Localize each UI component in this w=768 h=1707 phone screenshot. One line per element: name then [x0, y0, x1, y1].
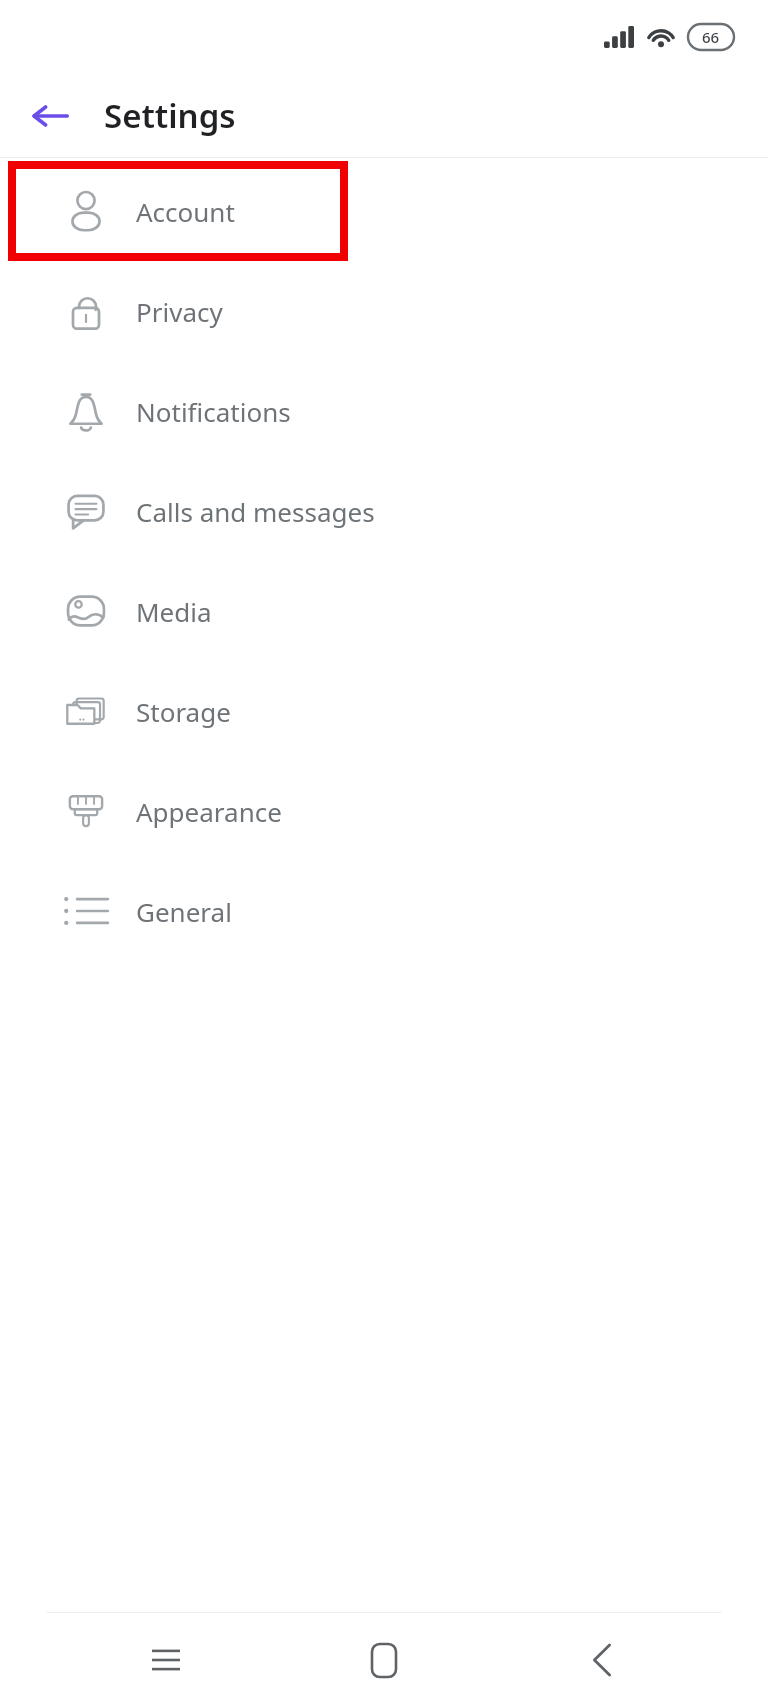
staticText: Media [136, 594, 212, 629]
button[interactable]: Privacy [0, 261, 768, 361]
staticText: 66 [702, 27, 720, 47]
button[interactable]: General [0, 861, 768, 961]
button[interactable]: Notifications [0, 361, 768, 461]
staticText: Privacy [136, 294, 223, 329]
staticText: Storage [136, 694, 231, 729]
staticText: Appearance [136, 794, 282, 829]
staticText: Settings [104, 93, 236, 138]
button[interactable]: Back [564, 1622, 640, 1698]
button[interactable]: Storage [0, 661, 768, 761]
staticText: General [136, 894, 232, 929]
staticText: Calls and messages [136, 494, 375, 529]
button[interactable]: Back [18, 84, 82, 148]
staticText: Account [136, 194, 235, 229]
button[interactable]: Recent apps [128, 1622, 204, 1698]
button[interactable]: Account [0, 161, 768, 261]
button[interactable]: Home [346, 1622, 422, 1698]
button[interactable]: Calls and messages [0, 461, 768, 561]
button[interactable]: Media [0, 561, 768, 661]
staticText: Notifications [136, 394, 291, 429]
button[interactable]: Appearance [0, 761, 768, 861]
